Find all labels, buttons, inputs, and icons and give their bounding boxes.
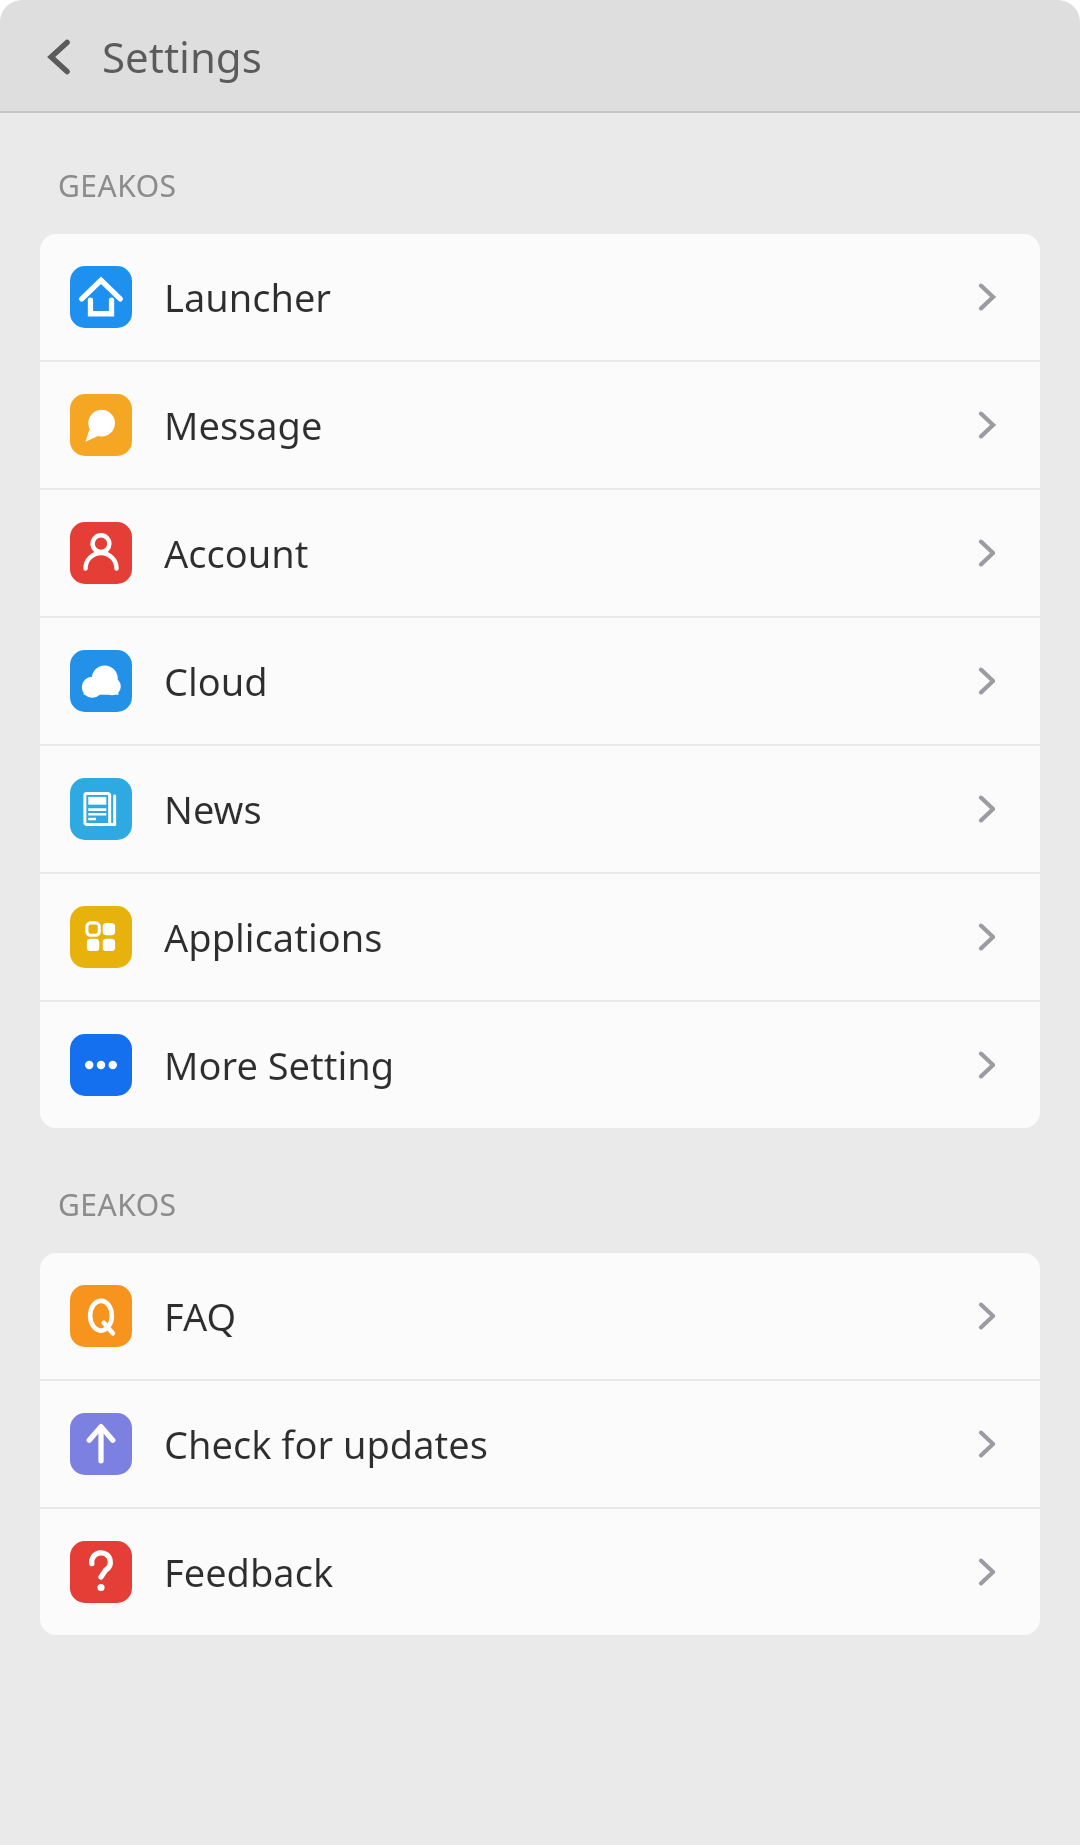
button[interactable]: Applications xyxy=(40,874,1040,1000)
button[interactable]: Account xyxy=(40,490,1040,616)
button[interactable]: Cloud xyxy=(40,618,1040,744)
staticText: Applications xyxy=(164,911,383,963)
button[interactable]: Back xyxy=(24,21,96,93)
button[interactable]: News xyxy=(40,746,1040,872)
button[interactable]: FAQ xyxy=(40,1253,1040,1379)
staticText: FAQ xyxy=(164,1290,237,1342)
staticText: Launcher xyxy=(164,271,332,323)
button[interactable]: Feedback xyxy=(40,1509,1040,1635)
button[interactable]: Launcher xyxy=(40,234,1040,360)
staticText: Cloud xyxy=(164,655,268,707)
button[interactable]: Check for updates xyxy=(40,1381,1040,1507)
staticText: Message xyxy=(164,399,323,451)
button[interactable]: More Setting xyxy=(40,1002,1040,1128)
staticText: Feedback xyxy=(164,1546,334,1598)
staticText: Account xyxy=(164,527,309,579)
staticText: GEAKOS xyxy=(58,1184,177,1225)
staticText: GEAKOS xyxy=(58,165,177,206)
staticText: Check for updates xyxy=(164,1418,488,1470)
staticText: Settings xyxy=(102,28,262,85)
staticText: More Setting xyxy=(164,1039,395,1091)
staticText: News xyxy=(164,783,262,835)
button[interactable]: Message xyxy=(40,362,1040,488)
